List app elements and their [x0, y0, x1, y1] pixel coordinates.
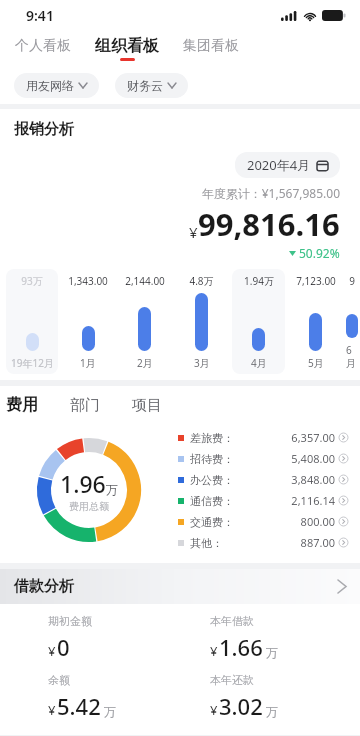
- staticText: ¥: [210, 701, 218, 719]
- staticText: 3月: [194, 356, 210, 370]
- button[interactable]: 办公费：: [178, 469, 348, 490]
- button[interactable]: 个人看板: [12, 36, 74, 61]
- staticText: 2020年4月: [247, 156, 311, 174]
- staticText: 组织看板: [95, 36, 159, 56]
- staticText: 99,816.16: [198, 203, 340, 245]
- button[interactable]: 9: [346, 269, 358, 374]
- button[interactable]: 93万: [6, 269, 58, 374]
- button[interactable]: 1.94万: [232, 269, 285, 374]
- staticText: 差旅费：: [190, 431, 234, 445]
- staticText: 万: [104, 704, 116, 719]
- staticText: ¥: [210, 642, 218, 660]
- other: Details: [339, 538, 348, 547]
- staticText: 本年还款: [210, 673, 254, 687]
- button[interactable]: 招待费：: [178, 448, 348, 469]
- staticText: 万: [266, 645, 278, 660]
- button[interactable]: 报销分析: [14, 120, 74, 139]
- staticText: 1,343.00: [68, 274, 108, 288]
- staticText: 5,408.00: [234, 451, 335, 466]
- staticText: 9: [349, 274, 355, 288]
- staticText: ¥: [48, 701, 56, 719]
- staticText: 93万: [21, 274, 43, 288]
- staticText: 交通费：: [190, 515, 234, 529]
- button[interactable]: 4.8万: [175, 269, 228, 374]
- other: Details: [339, 496, 348, 505]
- button[interactable]: 集团看板: [180, 36, 242, 61]
- staticText: 集团看板: [183, 37, 239, 55]
- staticText: 2,116.14: [234, 493, 335, 508]
- staticText: 5.42: [57, 691, 101, 721]
- staticText: 19年12月: [11, 356, 54, 370]
- staticText: ¥: [189, 222, 198, 242]
- staticText: 1.96: [60, 468, 106, 499]
- staticText: 部门: [70, 396, 100, 415]
- other: Details: [339, 454, 348, 463]
- staticText: 期初金额: [48, 614, 92, 628]
- staticText: 其他：: [190, 536, 223, 550]
- staticText: ¥: [48, 642, 56, 660]
- other: Details: [339, 433, 348, 442]
- button[interactable]: 其他：: [178, 532, 348, 553]
- staticText: 4月: [251, 356, 267, 370]
- button[interactable]: 交通费：: [178, 511, 348, 532]
- staticText: 5月: [308, 356, 324, 370]
- other: Details: [339, 517, 348, 526]
- button[interactable]: 费用: [0, 393, 44, 417]
- staticText: 财务云: [127, 78, 163, 93]
- staticText: 4.8万: [189, 274, 214, 288]
- staticText: 50.92%: [299, 245, 340, 261]
- staticText: 7,123.00: [296, 274, 336, 288]
- button[interactable]: 借款分析: [0, 569, 360, 604]
- staticText: 招待费：: [190, 452, 234, 466]
- staticText: 办公费：: [190, 473, 234, 487]
- staticText: 6,357.00: [234, 430, 335, 445]
- staticText: 万: [106, 482, 118, 497]
- staticText: 用友网络: [26, 78, 74, 93]
- staticText: 800.00: [234, 514, 335, 529]
- button[interactable]: 通信费：: [178, 490, 348, 511]
- staticText: 余额: [48, 673, 70, 687]
- other: Details: [339, 475, 348, 484]
- staticText: 2月: [137, 356, 153, 370]
- staticText: 本年借款: [210, 614, 254, 628]
- button[interactable]: 本年还款: [210, 673, 360, 721]
- staticText: 3.02: [219, 691, 263, 721]
- button[interactable]: 7,123.00: [289, 269, 342, 374]
- button[interactable]: 余额: [48, 673, 180, 721]
- button[interactable]: 项目: [126, 394, 168, 417]
- staticText: 9:41: [26, 6, 54, 25]
- staticText: 项目: [132, 396, 162, 415]
- button[interactable]: 部门: [64, 394, 106, 417]
- button[interactable]: 1,343.00: [62, 269, 114, 374]
- staticText: 1.66: [219, 632, 263, 662]
- staticText: 6月: [346, 343, 358, 370]
- staticText: 3,848.00: [234, 472, 335, 487]
- button[interactable]: 财务云: [115, 73, 188, 98]
- button[interactable]: 2020年4月: [235, 152, 340, 178]
- staticText: 1月: [80, 356, 96, 370]
- staticText: 借款分析: [14, 577, 74, 596]
- staticText: 0: [57, 632, 70, 662]
- staticText: 万: [266, 704, 278, 719]
- button[interactable]: 组织看板: [92, 35, 162, 62]
- staticText: 通信费：: [190, 494, 234, 508]
- staticText: 887.00: [223, 535, 335, 550]
- button[interactable]: 差旅费：: [178, 427, 348, 448]
- staticText: 1.94万: [244, 274, 274, 288]
- staticText: 年度累计：¥1,567,985.00: [0, 185, 340, 201]
- button[interactable]: 用友网络: [14, 73, 99, 98]
- staticText: 个人看板: [15, 37, 71, 55]
- other: More: [338, 580, 346, 593]
- button[interactable]: 本年借款: [210, 614, 360, 662]
- button[interactable]: 期初金额: [48, 614, 180, 662]
- staticText: 费用总额: [69, 500, 109, 513]
- staticText: 费用: [6, 395, 38, 415]
- staticText: 2,144.00: [125, 274, 165, 288]
- button[interactable]: 2,144.00: [118, 269, 171, 374]
